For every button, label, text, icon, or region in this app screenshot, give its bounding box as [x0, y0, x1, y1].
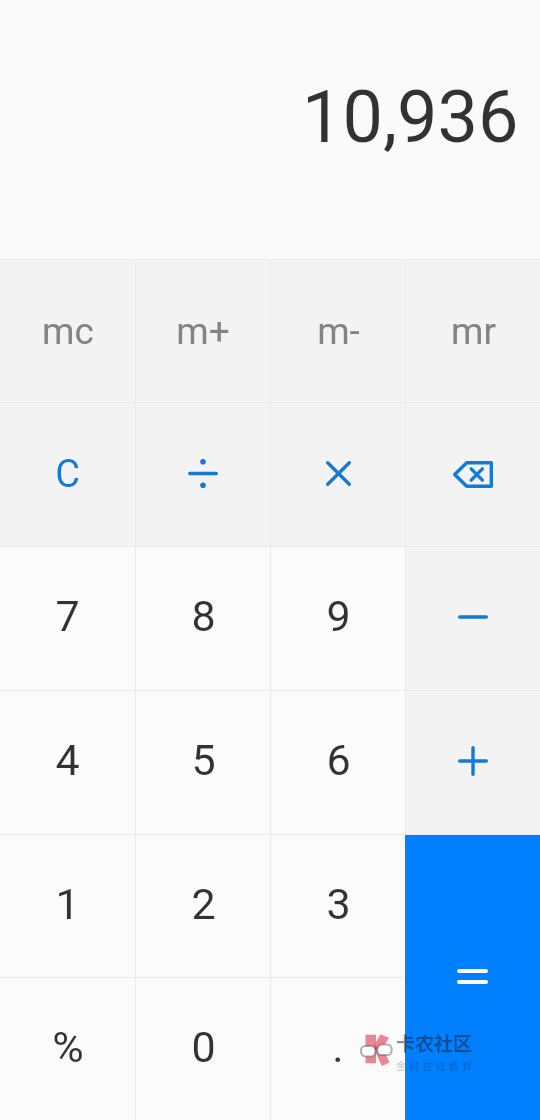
button[interactable]: Minus — [406, 547, 540, 690]
staticText: 1 — [55, 879, 80, 929]
button[interactable]: . — [271, 978, 405, 1120]
button[interactable]: Backspace — [406, 403, 540, 546]
staticText: C — [55, 452, 80, 497]
staticText: 8 — [191, 591, 216, 641]
staticText: mr — [451, 310, 496, 353]
button[interactable]: 2 — [136, 835, 270, 977]
staticText: 10,936 — [302, 75, 519, 159]
button[interactable]: 5 — [136, 691, 270, 834]
button[interactable]: mr — [406, 260, 540, 402]
staticText: 3 — [326, 879, 351, 929]
button[interactable]: Plus — [406, 691, 540, 834]
staticText: 卡农社区 — [396, 1029, 473, 1057]
staticText: mc — [42, 310, 94, 353]
button[interactable]: 0 — [136, 978, 270, 1120]
button[interactable]: % — [0, 978, 135, 1120]
button[interactable]: 1 — [0, 835, 135, 977]
button[interactable]: Equals — [405, 835, 540, 1120]
button[interactable]: mc — [0, 260, 135, 402]
button[interactable]: 7 — [0, 547, 135, 690]
staticText: m- — [317, 310, 360, 353]
button[interactable]: 4 — [0, 691, 135, 834]
button[interactable]: m- — [271, 260, 405, 402]
button[interactable]: 3 — [271, 835, 405, 977]
button[interactable]: m+ — [136, 260, 270, 402]
button[interactable]: 6 — [271, 691, 405, 834]
button[interactable]: Divide — [136, 403, 270, 546]
staticText: % — [52, 1022, 84, 1072]
button[interactable]: 8 — [136, 547, 270, 690]
staticText: 9 — [326, 591, 351, 641]
staticText: 7 — [55, 591, 80, 641]
button[interactable]: 9 — [271, 547, 405, 690]
button[interactable]: Multiply — [271, 403, 405, 546]
staticText: 6 — [326, 735, 351, 785]
staticText: . — [332, 1022, 344, 1072]
staticText: 4 — [55, 735, 80, 785]
staticText: 金融在线教育 — [396, 1058, 476, 1072]
staticText: 5 — [191, 735, 216, 785]
staticText: 2 — [191, 879, 216, 929]
staticText: m+ — [176, 310, 230, 353]
staticText: 0 — [191, 1022, 216, 1072]
button[interactable]: Clear — [0, 403, 135, 546]
